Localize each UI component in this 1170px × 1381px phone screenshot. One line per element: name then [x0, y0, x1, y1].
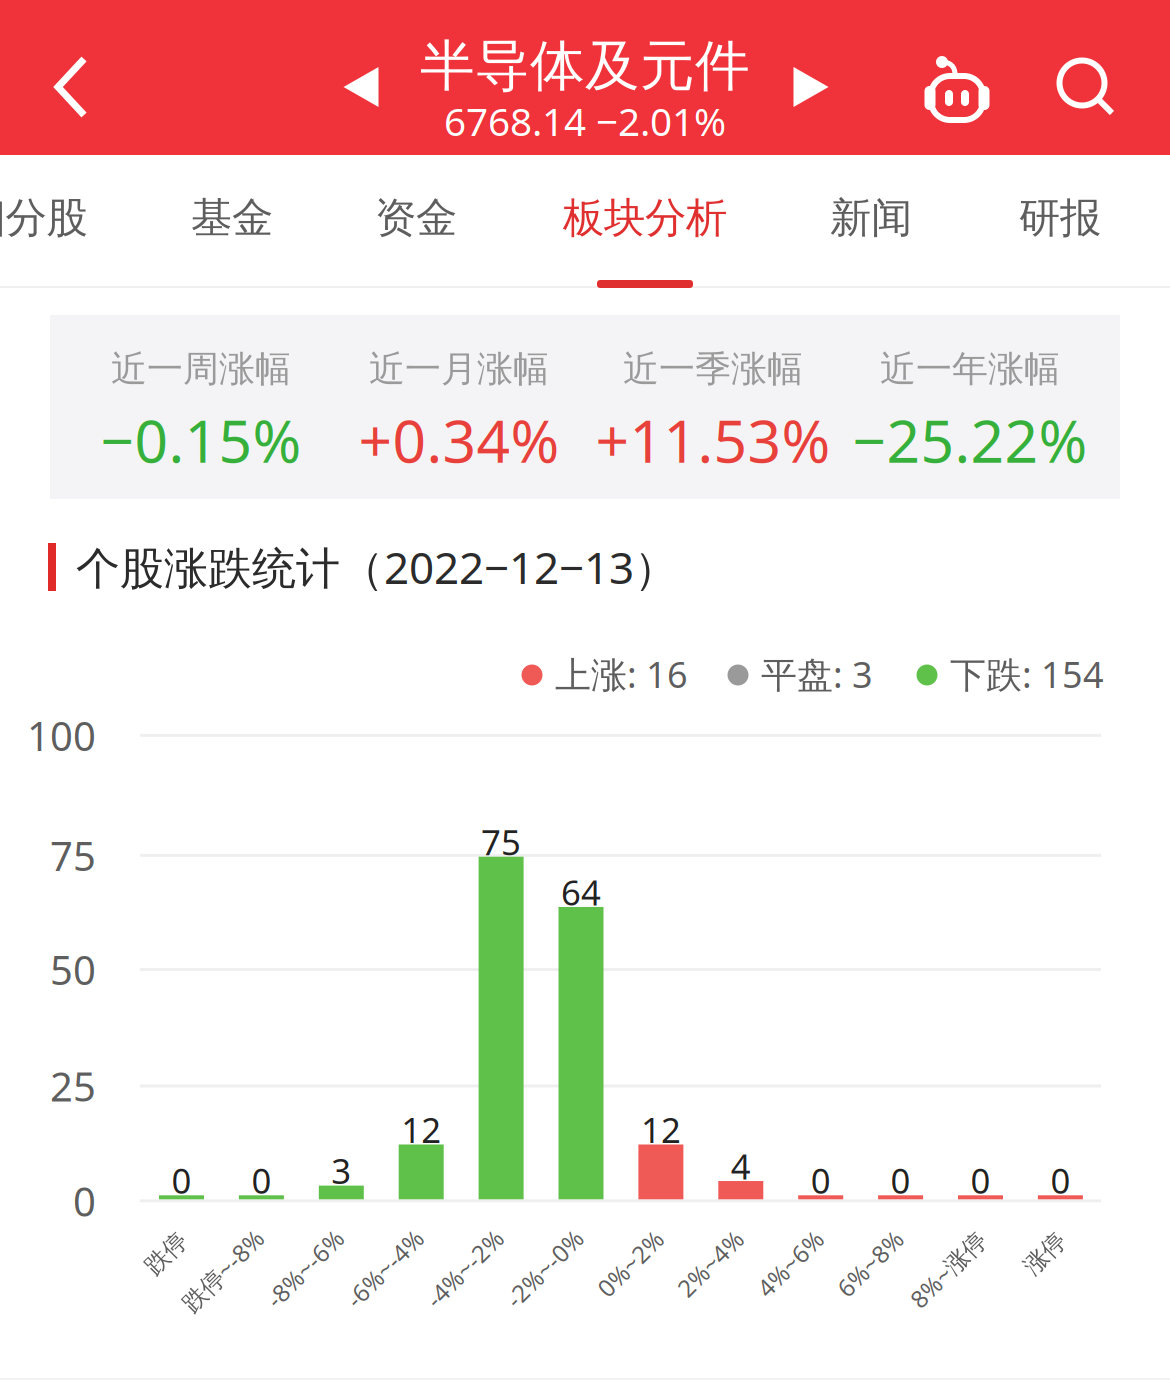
button[interactable]: 研报 [967, 155, 1153, 286]
staticText: 近一季涨幅 [623, 347, 803, 391]
staticText: −0.15% [100, 401, 301, 479]
staticText: 100 [27, 709, 96, 762]
button[interactable]: 基金 [139, 155, 325, 286]
button[interactable]: Back [15, 9, 127, 164]
button[interactable]: 板块分析 [532, 155, 758, 286]
staticText: 75 [50, 829, 96, 882]
staticText: 6768.14 −2.01% [444, 95, 726, 147]
staticText: 12 [401, 1106, 441, 1152]
staticText: 0 [1050, 1157, 1070, 1203]
staticText: -2%~-0% [495, 1253, 593, 1284]
staticText: 25 [50, 1059, 96, 1112]
button[interactable]: Previous sector [325, 37, 397, 137]
staticText: 0 [970, 1157, 990, 1203]
staticText: 跌停~-8% [171, 1255, 275, 1286]
staticText: 基金 [191, 193, 273, 243]
staticText: 64 [561, 869, 601, 915]
staticText: 涨停 [1021, 1239, 1069, 1268]
staticText: 0%~2% [589, 1248, 671, 1279]
staticText: 4 [731, 1143, 751, 1189]
button[interactable]: 新闻 [778, 155, 964, 286]
staticText: 0 [171, 1157, 191, 1203]
staticText: 50 [50, 943, 96, 996]
staticText: 细分股 [0, 193, 87, 243]
staticText: 0 [73, 1174, 96, 1227]
staticText: +0.34% [358, 401, 559, 479]
staticText: 0 [891, 1157, 911, 1203]
staticText: -4%~-2% [416, 1253, 514, 1284]
staticText: 75 [481, 819, 521, 865]
staticText: 半导体及元件 [420, 32, 750, 99]
button[interactable]: AI assistant [901, 9, 1013, 164]
staticText: 平盘: 3 [761, 650, 873, 698]
staticText: 个股涨跌统计（2022−12−13） [76, 538, 678, 596]
staticText: 2%~4% [669, 1248, 751, 1279]
staticText: -6%~-4% [336, 1253, 434, 1284]
staticText: 4%~6% [749, 1248, 831, 1279]
staticText: 板块分析 [563, 193, 727, 243]
staticText: 新闻 [830, 193, 912, 243]
staticText: 0 [251, 1157, 271, 1203]
staticText: +11.53% [595, 401, 830, 479]
button[interactable]: Search [1031, 10, 1143, 165]
staticText: 0 [811, 1157, 831, 1203]
staticText: 下跌: 154 [950, 650, 1104, 698]
staticText: 上涨: 16 [555, 650, 688, 698]
staticText: 研报 [1019, 193, 1101, 243]
staticText: 12 [641, 1106, 681, 1152]
staticText: 跌停 [142, 1239, 190, 1268]
staticText: 3 [331, 1148, 351, 1194]
staticText: 资金 [375, 193, 457, 243]
button[interactable]: 细分股 [0, 155, 116, 286]
staticText: 近一年涨幅 [880, 347, 1060, 391]
staticText: -8%~-6% [256, 1253, 354, 1284]
staticText: 近一月涨幅 [369, 347, 549, 391]
staticText: 近一周涨幅 [111, 347, 291, 391]
staticText: 8%~涨停 [900, 1254, 996, 1285]
staticText: 6%~8% [829, 1248, 911, 1279]
button[interactable]: Next sector [775, 37, 847, 137]
button[interactable]: 资金 [323, 155, 509, 286]
staticText: −25.22% [852, 401, 1087, 479]
